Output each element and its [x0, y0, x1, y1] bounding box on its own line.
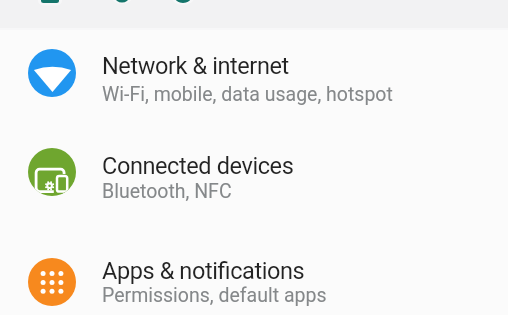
button[interactable]: Network & internet: [0, 28, 508, 123]
staticText: Wi-Fi, mobile, data usage, hotspot: [102, 83, 393, 106]
staticText: Connected devices: [102, 152, 294, 180]
staticText: Permissions, default apps: [102, 284, 327, 307]
staticText: Network & internet: [102, 52, 289, 80]
button[interactable]: Apps & notifications: [0, 227, 508, 315]
staticText: Apps & notifications: [102, 257, 305, 285]
staticText: Bluetooth, NFC: [102, 180, 232, 203]
button[interactable]: Connected devices: [0, 123, 508, 227]
